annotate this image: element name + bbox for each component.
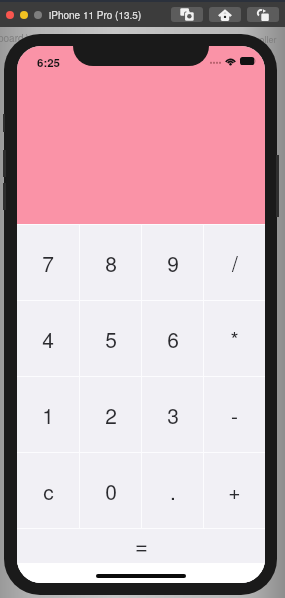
button[interactable]: c [17, 453, 79, 528]
button[interactable]: * [204, 301, 265, 376]
button[interactable]: Screenshot [171, 7, 203, 22]
staticText: iPhone 11 Pro (13.5) [49, 8, 142, 22]
button[interactable]: 9 [142, 225, 203, 300]
staticText: = [135, 529, 148, 561]
staticText: 5 [105, 324, 117, 354]
staticText: * [230, 324, 239, 354]
button[interactable]: 5 [80, 301, 141, 376]
staticText: 8 [105, 248, 117, 278]
button[interactable]: 6 [142, 301, 203, 376]
button[interactable]: 0 [80, 453, 141, 528]
staticText: c [43, 476, 54, 506]
button[interactable]: . [142, 453, 203, 528]
staticText: / [232, 248, 238, 278]
staticText: 1 [42, 400, 54, 430]
staticText: + [228, 476, 241, 506]
button[interactable]: - [204, 377, 265, 452]
staticText: 6:25 [37, 54, 61, 70]
staticText: - [231, 400, 238, 430]
button[interactable]: + [204, 453, 265, 528]
staticText: board \ [0, 31, 30, 45]
button[interactable]: 3 [142, 377, 203, 452]
button[interactable]: 8 [80, 225, 141, 300]
staticText: 7 [42, 248, 54, 278]
button[interactable]: 7 [17, 225, 79, 300]
button[interactable] [20, 11, 28, 19]
button[interactable]: / [204, 225, 265, 300]
staticText: 0 [105, 476, 117, 506]
button[interactable]: 4 [17, 301, 79, 376]
staticText: 9 [167, 248, 179, 278]
staticText: troller [254, 33, 277, 46]
button[interactable]: Rotate [247, 7, 279, 22]
button[interactable]: 1 [17, 377, 79, 452]
staticText: 6 [167, 324, 179, 354]
staticText: . [170, 476, 176, 506]
button[interactable]: = [17, 529, 265, 563]
button[interactable] [34, 11, 42, 19]
button[interactable]: Home [209, 7, 241, 22]
button[interactable] [6, 11, 14, 19]
staticText: 4 [42, 324, 54, 354]
staticText: 3 [167, 400, 179, 430]
button[interactable]: 2 [80, 377, 141, 452]
staticText: 2 [105, 400, 117, 430]
